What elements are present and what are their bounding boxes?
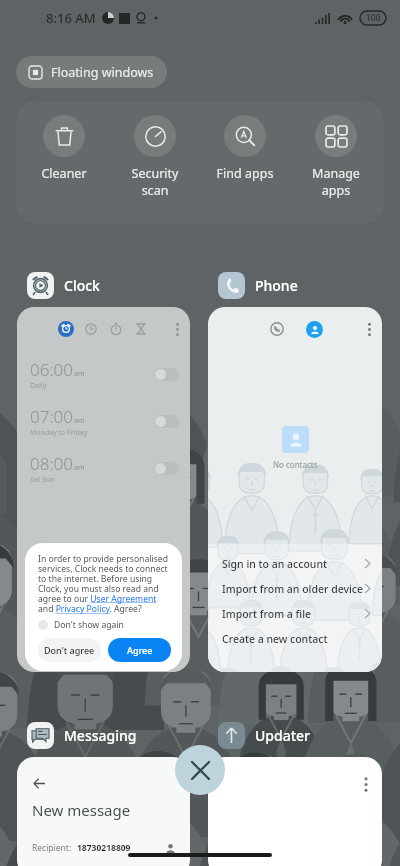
staticText: Cleaner [22,165,106,182]
staticText: am [74,463,85,473]
staticText: Import from an older device [222,582,364,596]
staticText: New message [32,800,131,820]
staticText: No contacts [273,459,318,470]
button[interactable]: Back [31,775,47,791]
staticText: Sign in to an account [222,557,327,571]
staticText: Messaging [64,726,137,745]
button[interactable]: Import from an older device [208,576,382,601]
button[interactable]: Agree [108,638,171,662]
button[interactable]: Import from a file [208,601,382,626]
button[interactable]: Security scan [113,115,197,198]
staticText: Create a new contact [222,632,328,646]
staticText: Daily [30,381,47,391]
button[interactable]: Find apps [203,115,287,182]
staticText: Manage apps [294,165,378,198]
button[interactable]: Updater [208,722,382,866]
button[interactable]: Don't agree [38,638,101,662]
button[interactable]: Cleaner [22,115,106,182]
staticText: 8:16 AM [46,9,96,27]
staticText: Updater [255,726,311,745]
button[interactable]: Floating windows [16,56,167,88]
button[interactable]: Close [175,745,225,795]
staticText: 18730218809 [77,842,131,854]
button[interactable]: Create a new contact [208,626,382,651]
staticText: Sat Sun [30,475,55,485]
button[interactable]: Sign in to an account [208,551,382,576]
staticText: Clock [64,276,100,295]
staticText: 100 [366,12,381,24]
staticText: am [74,369,85,379]
staticText: Security scan [113,165,197,198]
button[interactable]: Manage apps [294,115,378,198]
button[interactable]: Don't show again [38,619,124,631]
staticText: Don't agree [44,644,95,656]
staticText: 08:00 [30,452,73,475]
staticText: Agree [127,644,153,656]
staticText: 06:00 [30,358,73,381]
button[interactable]: Clock [17,272,190,672]
staticText: 07:00 [30,405,73,428]
staticText: Phone [255,276,298,295]
staticText: Find apps [203,165,287,182]
staticText: Don't show again [54,619,124,631]
staticText: Import from a file [222,607,312,621]
button[interactable]: Messaging [17,722,190,866]
staticText: am [74,416,85,426]
staticText: In order to provide personalised service… [38,553,171,615]
button[interactable]: Phone [208,272,382,672]
staticText: Recipient: [32,842,72,854]
staticText: Floating windows [51,64,154,81]
staticText: Monday to Friday [30,428,88,438]
